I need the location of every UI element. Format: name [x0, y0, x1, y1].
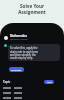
staticText: Question solved	[10, 38, 28, 41]
staticText: Topic	[3, 80, 11, 84]
staticText: To solve this, apply the chain rule to e…	[10, 46, 39, 59]
staticText: Continue	[11, 68, 22, 71]
staticText: More	[47, 81, 52, 84]
staticText: Solve Your Assignment	[18, 3, 46, 15]
button[interactable]: More	[44, 80, 54, 84]
staticText: Mathematics	[10, 34, 27, 38]
button[interactable]: Continue	[9, 67, 24, 72]
